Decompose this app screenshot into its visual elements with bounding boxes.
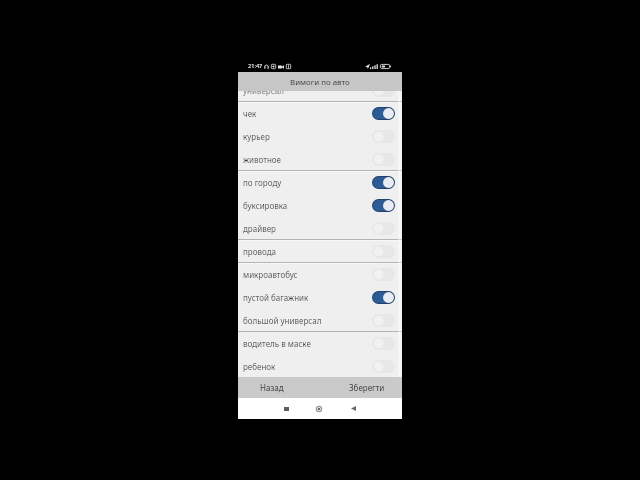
staticText: ребенок [243,361,276,372]
button[interactable]: провода [238,240,402,263]
button[interactable]: драйвер [238,217,402,240]
staticText: микроавтобус [243,269,298,280]
staticText: Зберегти [349,382,385,393]
staticText: драйвер [243,223,276,234]
button[interactable]: Recent apps [276,398,296,419]
button[interactable]: по городу [238,171,402,194]
button[interactable]: Зберегти [333,377,401,398]
button[interactable]: Home [309,398,329,419]
staticText: курьер [243,131,270,142]
staticText: Вимоги по авто [290,77,350,88]
staticText: буксировка [243,200,288,211]
button[interactable]: Back [343,398,363,419]
staticText: чек [243,108,257,119]
button[interactable]: универсал [238,91,402,102]
staticText: пустой багажник [243,292,309,303]
button[interactable]: курьер [238,125,402,148]
button[interactable]: ребенок [238,355,402,377]
staticText: животное [243,154,282,165]
staticText: 21:47 [248,62,263,70]
button[interactable]: пустой багажник [238,286,402,309]
staticText: по городу [243,177,282,188]
button[interactable]: водитель в маске [238,332,402,355]
staticText: водитель в маске [243,338,311,349]
staticText: провода [243,246,276,257]
button[interactable]: микроавтобус [238,263,402,286]
button[interactable]: большой универсал [238,309,402,332]
button[interactable]: буксировка [238,194,402,217]
staticText: универсал [243,91,284,96]
button[interactable]: Назад [238,377,306,398]
staticText: Назад [260,382,284,393]
staticText: большой универсал [243,315,322,326]
button[interactable]: животное [238,148,402,171]
button[interactable]: чек [238,102,402,125]
